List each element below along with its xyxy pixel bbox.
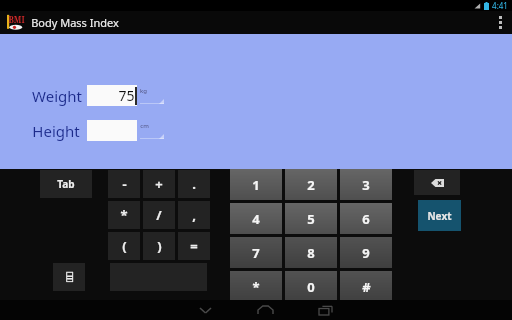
staticText: 1 <box>252 176 260 194</box>
staticText: 5 <box>307 210 315 228</box>
staticText: 0 <box>307 278 315 296</box>
button[interactable]: Home <box>248 300 282 320</box>
staticText: - <box>122 175 127 193</box>
button[interactable]: Tab <box>40 170 92 198</box>
staticText: 75 <box>118 86 135 105</box>
staticText: 9 <box>362 244 370 262</box>
button[interactable]: , <box>178 201 210 229</box>
staticText: # <box>362 278 371 296</box>
staticText: + <box>155 175 163 193</box>
staticText: 4:41 <box>492 0 508 11</box>
staticText: Height <box>32 121 80 141</box>
button[interactable]: . <box>178 170 210 198</box>
staticText: Weight <box>32 86 82 106</box>
staticText: , <box>192 206 196 224</box>
staticText: * <box>120 206 128 224</box>
button[interactable]: ( <box>108 232 140 260</box>
button[interactable]: More options <box>488 11 512 34</box>
staticText: 2 <box>307 176 315 194</box>
staticText: 7 <box>252 244 260 262</box>
button[interactable]: 5 <box>285 203 337 234</box>
button[interactable]: - <box>108 170 140 198</box>
staticText: cm <box>140 122 149 130</box>
staticText: ( <box>122 237 127 255</box>
button[interactable]: 0 <box>285 271 337 302</box>
staticText: kg <box>140 87 147 95</box>
button[interactable]: ) <box>143 232 175 260</box>
staticText: Tab <box>57 177 75 191</box>
staticText: / <box>156 206 162 224</box>
button[interactable]: 9 <box>340 237 392 268</box>
button[interactable]: 8 <box>285 237 337 268</box>
staticText: 4 <box>252 210 260 228</box>
button[interactable]: / <box>143 201 175 229</box>
staticText: ) <box>157 237 162 255</box>
button[interactable]: Hide keyboard <box>188 300 222 320</box>
staticText: BMI <box>8 14 25 25</box>
button[interactable]: * <box>230 271 282 302</box>
button[interactable]: 6 <box>340 203 392 234</box>
button[interactable]: + <box>143 170 175 198</box>
button[interactable]: # <box>340 271 392 302</box>
button[interactable]: * <box>108 201 140 229</box>
staticText: . <box>192 175 196 193</box>
button[interactable]: 4 <box>230 203 282 234</box>
staticText: 6 <box>362 210 370 228</box>
staticText: 8 <box>307 244 315 262</box>
button[interactable]: 1 <box>230 169 282 200</box>
staticText: * <box>252 278 260 296</box>
button[interactable]: = <box>178 232 210 260</box>
button[interactable]: Recent apps <box>308 300 342 320</box>
button[interactable]: 2 <box>285 169 337 200</box>
staticText: 3 <box>362 176 370 194</box>
button[interactable]: 75 <box>87 85 137 106</box>
button[interactable]: Symbols <box>53 263 85 291</box>
button[interactable]: 7 <box>230 237 282 268</box>
button[interactable]: Next <box>418 200 461 231</box>
button[interactable]: Delete <box>414 170 460 195</box>
staticText: = <box>190 237 198 255</box>
staticText: Next <box>427 209 452 223</box>
staticText: Body Mass Index <box>31 15 119 30</box>
staticText: ⌸ <box>66 271 73 284</box>
button[interactable]: 3 <box>340 169 392 200</box>
